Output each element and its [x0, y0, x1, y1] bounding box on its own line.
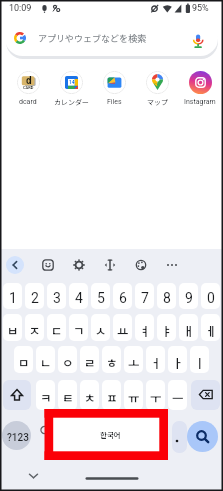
staticText: アプリやウェブなどを検索 — [38, 32, 147, 45]
staticText: Files — [107, 98, 122, 106]
button[interactable]: ㅍ — [102, 380, 121, 410]
staticText: 6 — [119, 290, 127, 306]
button[interactable]: ㅁ — [14, 346, 33, 373]
button[interactable]: 6 — [113, 283, 132, 309]
staticText: 0 — [207, 290, 215, 306]
staticText: ㅍ — [106, 388, 118, 406]
button[interactable]: 5 — [91, 283, 110, 309]
staticText: ㅊ — [84, 388, 96, 406]
button[interactable]: ㅕ — [135, 314, 154, 341]
staticText: ㅠ — [128, 388, 140, 406]
staticText: ㅁ — [18, 353, 30, 371]
staticText: ㄹ — [84, 353, 96, 371]
staticText: ㅔ — [205, 321, 217, 339]
staticText: ㅑ — [161, 321, 173, 339]
button[interactable] — [187, 421, 218, 452]
staticText: ㄱ — [73, 321, 85, 339]
staticText: 3 — [53, 290, 61, 306]
staticText: ㅡ — [172, 388, 184, 406]
staticText: カレンダー — [54, 97, 89, 107]
staticText: ㅅ — [95, 321, 107, 339]
staticText: ㅛ — [117, 321, 129, 339]
button[interactable] — [6, 256, 24, 274]
staticText: マップ — [147, 97, 168, 107]
button[interactable]: ㅐ — [179, 314, 198, 341]
staticText: 95% — [192, 3, 209, 14]
staticText: ㅜ — [150, 388, 162, 406]
button[interactable] — [3, 380, 31, 410]
button[interactable]: ㅜ — [146, 380, 165, 410]
button[interactable]: 2 — [25, 283, 44, 309]
button[interactable]: ?123 — [2, 421, 31, 450]
button[interactable]: ㅠ — [124, 380, 143, 410]
button[interactable]: ㅅ — [91, 314, 110, 341]
button[interactable] — [172, 421, 187, 453]
button[interactable]: ㅏ — [168, 346, 187, 373]
staticText: 2 — [31, 290, 39, 306]
staticText: ㅣ — [194, 353, 206, 371]
staticText: ㅇ — [62, 353, 74, 371]
button[interactable] — [189, 71, 212, 94]
button[interactable] — [135, 259, 147, 271]
button[interactable]: ㅌ — [58, 380, 77, 410]
button[interactable]: 3 — [47, 283, 66, 309]
button[interactable]: ㅈ — [25, 314, 44, 341]
staticText: 한국어 — [100, 429, 121, 440]
button[interactable]: 14 — [60, 71, 83, 94]
staticText: ㅌ — [62, 388, 74, 406]
button[interactable]: ㅋ — [36, 380, 55, 410]
staticText: 1 — [9, 290, 17, 306]
staticText: dcard — [19, 98, 37, 106]
button[interactable]: ㅗ — [124, 346, 143, 373]
staticText: ㅈ — [29, 321, 41, 339]
button[interactable]: 1 — [3, 283, 22, 309]
button[interactable]: ㅎ — [102, 346, 121, 373]
button[interactable]: ㅑ — [157, 314, 176, 341]
button[interactable] — [191, 380, 220, 410]
button[interactable]: ㅇ — [58, 346, 77, 373]
button[interactable]: ㅊ — [80, 380, 99, 410]
button[interactable]: ㄹ — [80, 346, 99, 373]
button[interactable] — [166, 259, 178, 271]
button[interactable] — [146, 71, 169, 94]
staticText: Instagram — [184, 98, 216, 106]
button[interactable] — [42, 259, 54, 271]
button[interactable]: d — [17, 71, 40, 94]
staticText: CARD — [23, 85, 34, 90]
staticText: ㅋ — [40, 388, 52, 406]
staticText: 8 — [163, 290, 171, 306]
staticText: 14 — [69, 79, 75, 85]
button[interactable]: ㄴ — [36, 346, 55, 373]
button[interactable]: ㅓ — [146, 346, 165, 373]
staticText: ㅂ — [7, 321, 19, 339]
button[interactable] — [73, 259, 85, 271]
button[interactable]: ㅛ — [113, 314, 132, 341]
staticText: 7 — [141, 290, 149, 306]
button[interactable]: ㅂ — [3, 314, 22, 341]
staticText: ?123 — [7, 432, 29, 444]
button[interactable]: ㅔ — [201, 314, 220, 341]
button[interactable] — [103, 71, 126, 94]
button[interactable]: アプリやウェブなどを検索 — [5, 20, 218, 56]
button[interactable]: 7 — [135, 283, 154, 309]
button[interactable]: ㄷ — [47, 314, 66, 341]
button[interactable]: ㄱ — [69, 314, 88, 341]
staticText: 4 — [75, 290, 83, 306]
staticText: ㅏ — [172, 353, 184, 371]
staticText: 10:09 — [9, 3, 32, 14]
button[interactable] — [48, 413, 165, 454]
button[interactable]: ㅡ — [168, 380, 187, 410]
staticText: ㅎ — [106, 353, 118, 371]
button[interactable]: 0 — [201, 283, 220, 309]
button[interactable] — [104, 259, 116, 271]
staticText: 9 — [185, 290, 193, 306]
staticText: ㅕ — [139, 321, 151, 339]
button[interactable]: 9 — [179, 283, 198, 309]
staticText: ㅓ — [150, 353, 162, 371]
button[interactable]: 4 — [69, 283, 88, 309]
button[interactable]: 8 — [157, 283, 176, 309]
staticText: ㄴ — [40, 353, 52, 371]
staticText: 5 — [97, 290, 105, 306]
staticText: ㅗ — [128, 353, 140, 371]
button[interactable]: ㅣ — [190, 346, 209, 373]
